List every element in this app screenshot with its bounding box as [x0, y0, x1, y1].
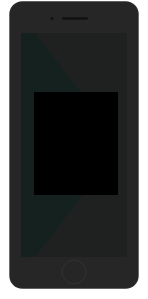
button[interactable]: Smartphone device mockup with dark scree… — [0, 0, 148, 299]
